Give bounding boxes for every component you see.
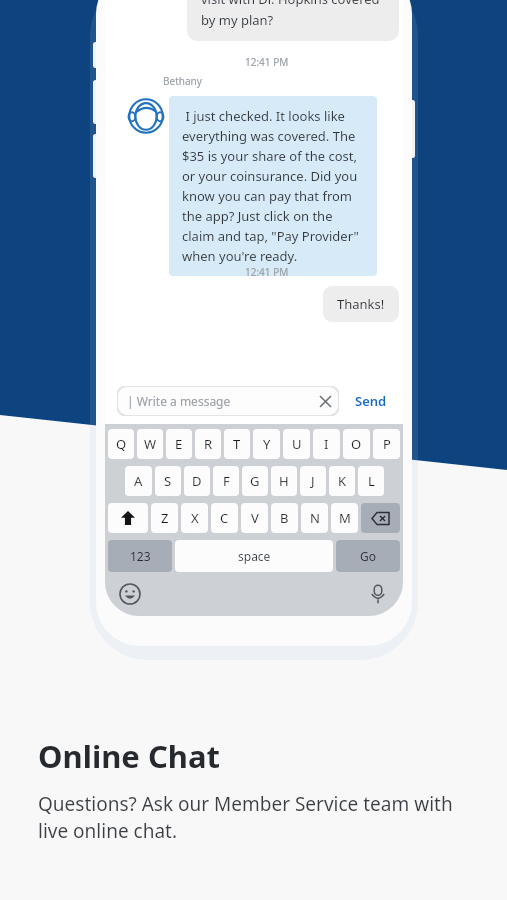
staticText: 123 [130,548,151,564]
button[interactable]: H [271,466,297,496]
staticText: Send [355,392,387,410]
button[interactable]: | Write a message [117,386,339,416]
button[interactable]: A [125,466,152,496]
button[interactable]: Voice input [367,583,389,605]
button[interactable]: L [358,466,384,496]
button[interactable]: Was everything from my last visit with D… [187,0,399,41]
staticText: X [191,509,199,527]
button[interactable]: Emoji [119,583,141,605]
button[interactable]: I just checked. It looks like everything… [169,96,377,276]
button[interactable]: O [343,429,370,459]
button[interactable]: G [242,466,268,496]
staticText: Go [360,548,376,564]
staticText: C [220,509,229,527]
staticText: Thanks! [337,295,385,313]
staticText: | Write a message [127,393,231,409]
button[interactable]: Go [336,540,400,572]
staticText: F [223,472,230,490]
staticText: D [192,472,202,490]
staticText: O [351,435,362,453]
staticText: Questions? Ask our Member Service team w… [38,791,478,844]
staticText: V [251,509,259,527]
button[interactable]: Backspace [361,503,400,533]
button[interactable]: F [213,466,239,496]
staticText: A [134,472,143,490]
button[interactable]: B [271,503,298,533]
staticText: P [383,435,391,453]
staticText: 12:41 PM [245,55,289,69]
staticText: N [310,509,320,527]
staticText: L [368,472,375,490]
staticText: U [292,435,302,453]
staticText: T [233,435,241,453]
staticText: I just checked. It looks like everything… [182,107,364,265]
button[interactable]: V [241,503,268,533]
button[interactable]: Send [351,386,391,416]
button[interactable]: X [181,503,208,533]
button[interactable]: space [175,540,333,572]
button[interactable]: Shift [108,503,148,533]
button[interactable]: W [137,429,163,459]
button[interactable]: N [301,503,328,533]
button[interactable]: Thanks! [323,286,399,322]
button[interactable]: S [155,466,181,496]
staticText: R [204,435,213,453]
button[interactable]: E [166,429,192,459]
staticText: Y [263,435,271,453]
button[interactable]: Q [108,429,134,459]
button[interactable]: M [331,503,358,533]
staticText: space [238,548,271,564]
staticText: K [338,472,347,490]
staticText: E [175,435,183,453]
staticText: S [164,472,172,490]
button[interactable]: K [329,466,355,496]
button[interactable]: D [184,466,210,496]
staticText: Bethany [163,74,202,88]
staticText: I [324,435,329,453]
button[interactable]: I [313,429,340,459]
staticText: 12:41 PM [245,265,289,279]
button[interactable]: Z [151,503,178,533]
button[interactable]: P [373,429,400,459]
staticText: Q [116,435,127,453]
staticText: H [279,472,289,490]
button[interactable]: T [224,429,250,459]
button[interactable]: Y [253,429,280,459]
staticText: B [280,509,289,527]
staticText: M [339,509,351,527]
button[interactable]: R [195,429,221,459]
staticText: J [311,472,315,490]
button[interactable]: C [211,503,238,533]
staticText: Online Chat [38,735,220,777]
button[interactable]: 123 [108,540,172,572]
staticText: Was everything from my last visit with D… [201,0,385,29]
staticText: G [250,472,260,490]
button[interactable]: U [283,429,310,459]
button[interactable]: J [300,466,326,496]
staticText: Z [161,509,169,527]
other: Clear [320,396,331,407]
other: Agent avatar [127,97,165,135]
staticText: W [144,435,157,453]
